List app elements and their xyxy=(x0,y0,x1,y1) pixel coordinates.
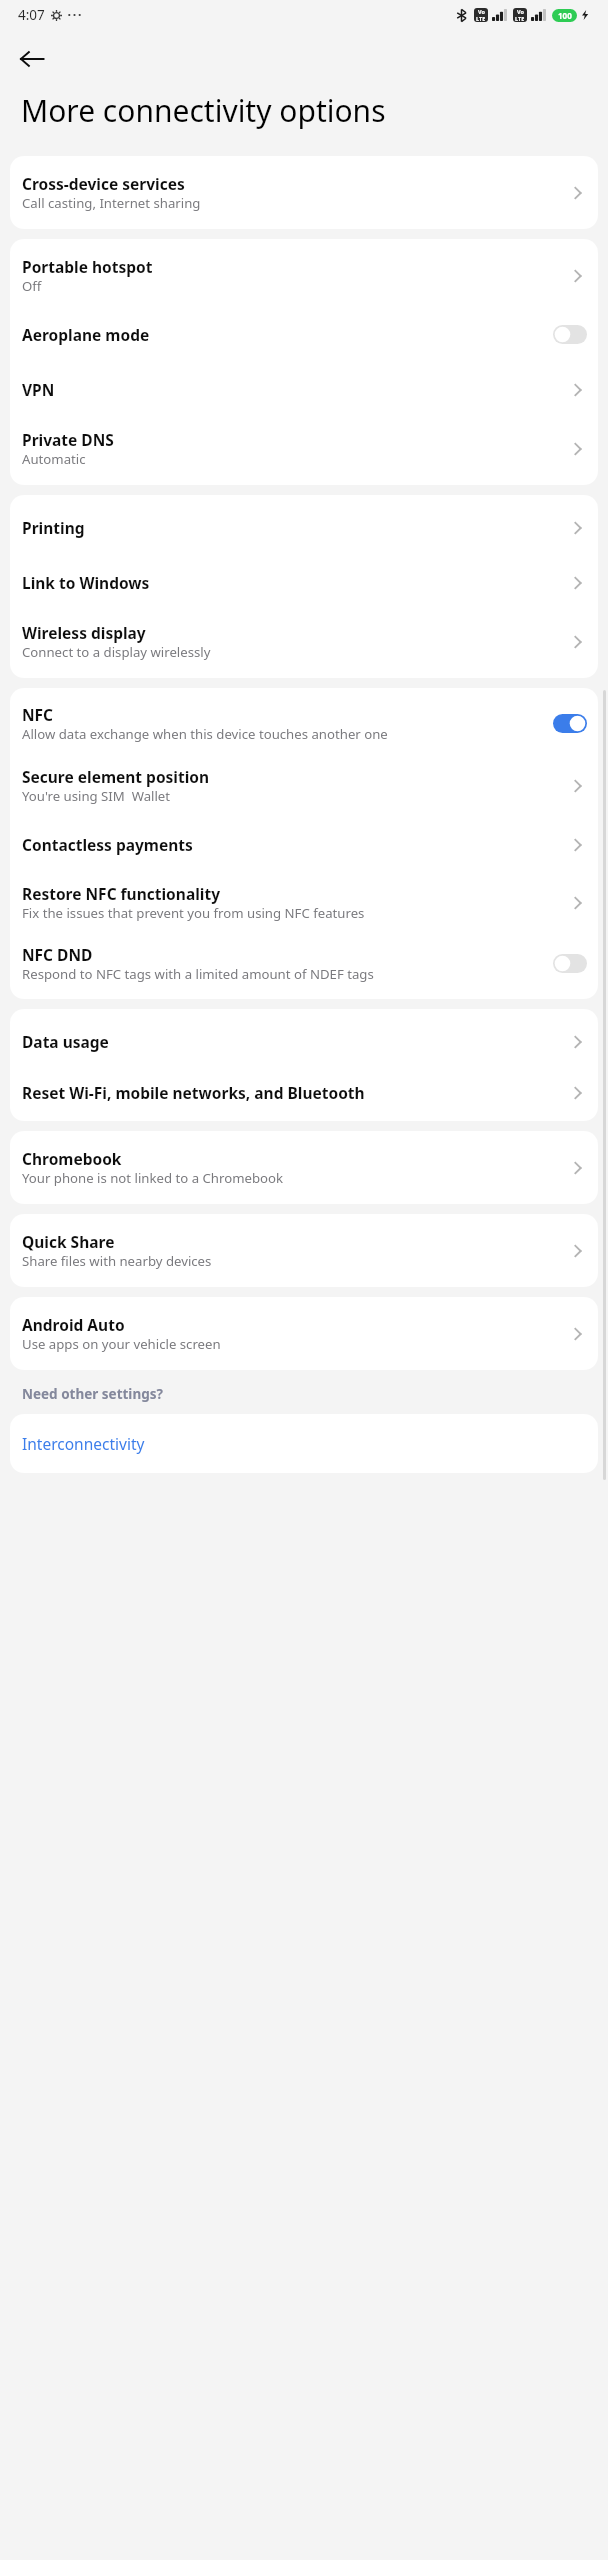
staticText: Contactless payments xyxy=(22,834,193,855)
staticText: Interconnectivity xyxy=(22,1433,145,1454)
staticText: Use apps on your vehicle screen xyxy=(22,1335,221,1353)
staticText: Link to Windows xyxy=(22,572,150,593)
staticText: Private DNS xyxy=(22,429,114,450)
staticText: More connectivity options xyxy=(21,90,386,131)
button[interactable]: Private DNS xyxy=(10,417,598,480)
staticText: LTE xyxy=(476,15,486,22)
staticText: Connect to a display wirelessly xyxy=(22,643,211,661)
button[interactable]: Link to Windows xyxy=(10,555,598,610)
button[interactable]: Back xyxy=(9,36,55,82)
staticText: LTE xyxy=(515,15,525,22)
button[interactable]: Portable hotspot xyxy=(10,244,598,307)
button[interactable]: Chromebook xyxy=(10,1136,598,1199)
button[interactable]: Contactless payments xyxy=(10,817,598,872)
staticText: NFC xyxy=(22,704,54,725)
button[interactable]: Restore NFC functionality xyxy=(10,872,598,933)
button[interactable]: Interconnectivity xyxy=(10,1419,598,1468)
button[interactable]: Printing xyxy=(10,500,598,555)
staticText: Reset Wi-Fi, mobile networks, and Blueto… xyxy=(22,1082,365,1103)
staticText: Vo xyxy=(478,8,485,15)
button[interactable]: VPN xyxy=(10,362,598,417)
staticText: Call casting, Internet sharing xyxy=(22,194,201,212)
button[interactable]: Quick Share xyxy=(10,1219,598,1282)
button[interactable]: Secure element position xyxy=(10,754,598,817)
staticText: Respond to NFC tags with a limited amoun… xyxy=(22,965,374,983)
staticText: Chromebook xyxy=(22,1148,122,1169)
button[interactable]: Switch off xyxy=(553,325,587,344)
staticText: Off xyxy=(22,277,42,295)
button[interactable]: Data usage xyxy=(10,1014,598,1069)
staticText: Wireless display xyxy=(22,622,146,643)
staticText: Share files with nearby devices xyxy=(22,1252,212,1270)
button[interactable]: Android Auto xyxy=(10,1302,598,1365)
button[interactable]: Wireless display xyxy=(10,610,598,673)
staticText: Portable hotspot xyxy=(22,256,153,277)
staticText: Secure element position xyxy=(22,766,210,787)
staticText: Data usage xyxy=(22,1031,109,1052)
staticText: Restore NFC functionality xyxy=(22,883,220,904)
button[interactable]: Switch on xyxy=(553,714,587,733)
staticText: Fix the issues that prevent you from usi… xyxy=(22,904,365,922)
staticText: VPN xyxy=(22,379,55,400)
staticText: Your phone is not linked to a Chromebook xyxy=(22,1169,284,1187)
staticText: NFC DND xyxy=(22,944,93,965)
staticText: Automatic xyxy=(22,450,86,468)
staticText: Aeroplane mode xyxy=(22,324,150,345)
staticText: Printing xyxy=(22,517,85,538)
staticText: 100 xyxy=(558,10,572,21)
button[interactable]: NFC DND xyxy=(10,933,598,994)
button[interactable]: Cross-device services xyxy=(10,161,598,224)
staticText: Vo xyxy=(517,8,524,15)
staticText: Android Auto xyxy=(22,1314,125,1335)
staticText: Cross-device services xyxy=(22,173,185,194)
button[interactable]: Aeroplane mode xyxy=(10,307,598,362)
staticText: Need other settings? xyxy=(22,1385,163,1403)
button[interactable]: Reset Wi-Fi, mobile networks, and Blueto… xyxy=(10,1069,598,1116)
staticText: 4:07 xyxy=(18,6,45,24)
staticText: You're using SIM Wallet xyxy=(22,787,171,805)
staticText: Allow data exchange when this device tou… xyxy=(22,725,388,743)
button[interactable]: Switch off xyxy=(553,954,587,973)
staticText: Quick Share xyxy=(22,1231,115,1252)
button[interactable]: NFC xyxy=(10,693,598,754)
